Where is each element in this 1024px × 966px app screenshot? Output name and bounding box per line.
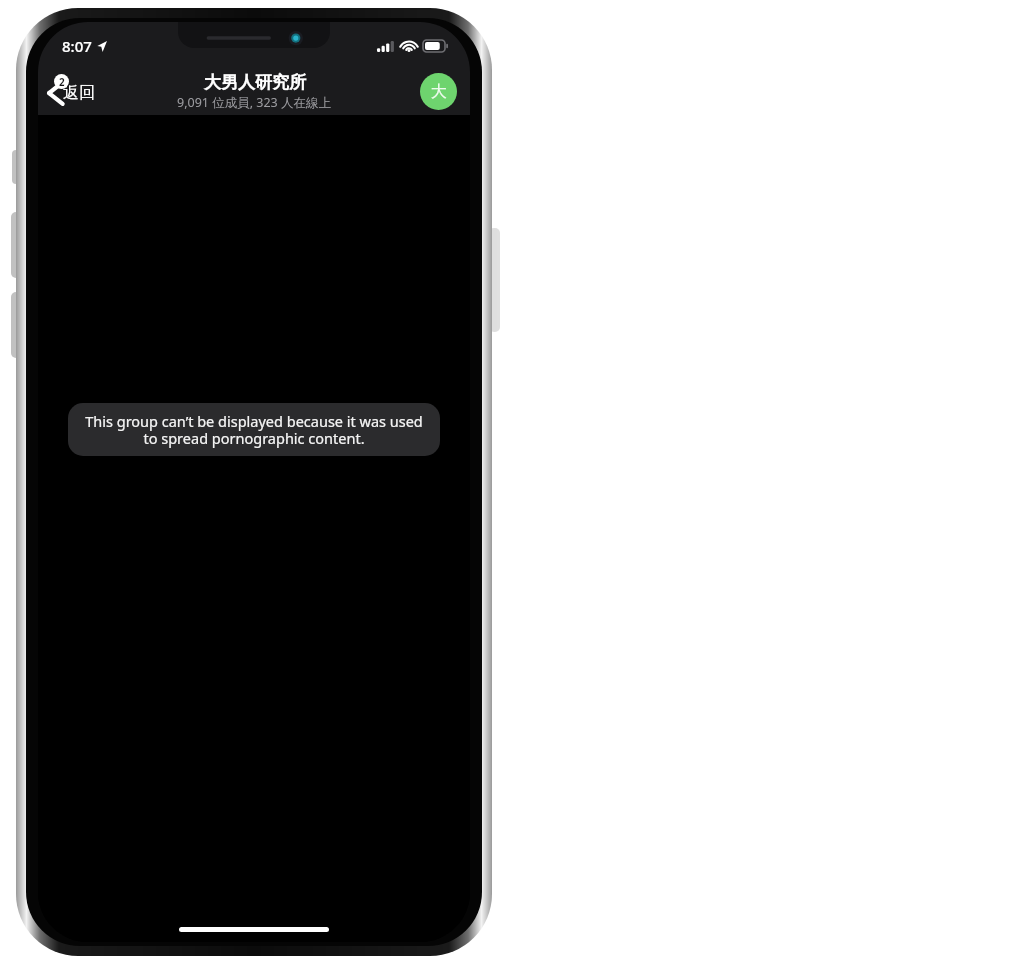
button[interactable]: 2 bbox=[38, 75, 104, 110]
staticText: 大 bbox=[431, 82, 447, 102]
staticText: 9,091 位成員, 323 人在線上 bbox=[177, 94, 332, 111]
staticText: 返回 bbox=[63, 83, 95, 103]
staticText: 8:07 bbox=[62, 36, 92, 56]
button[interactable]: This group can’t be displayed because it… bbox=[68, 403, 440, 456]
button[interactable]: Group profile bbox=[420, 73, 457, 110]
staticText: 2 bbox=[59, 75, 65, 89]
staticText: This group can’t be displayed because it… bbox=[80, 411, 428, 448]
staticText: 大男人研究所 bbox=[204, 72, 306, 93]
